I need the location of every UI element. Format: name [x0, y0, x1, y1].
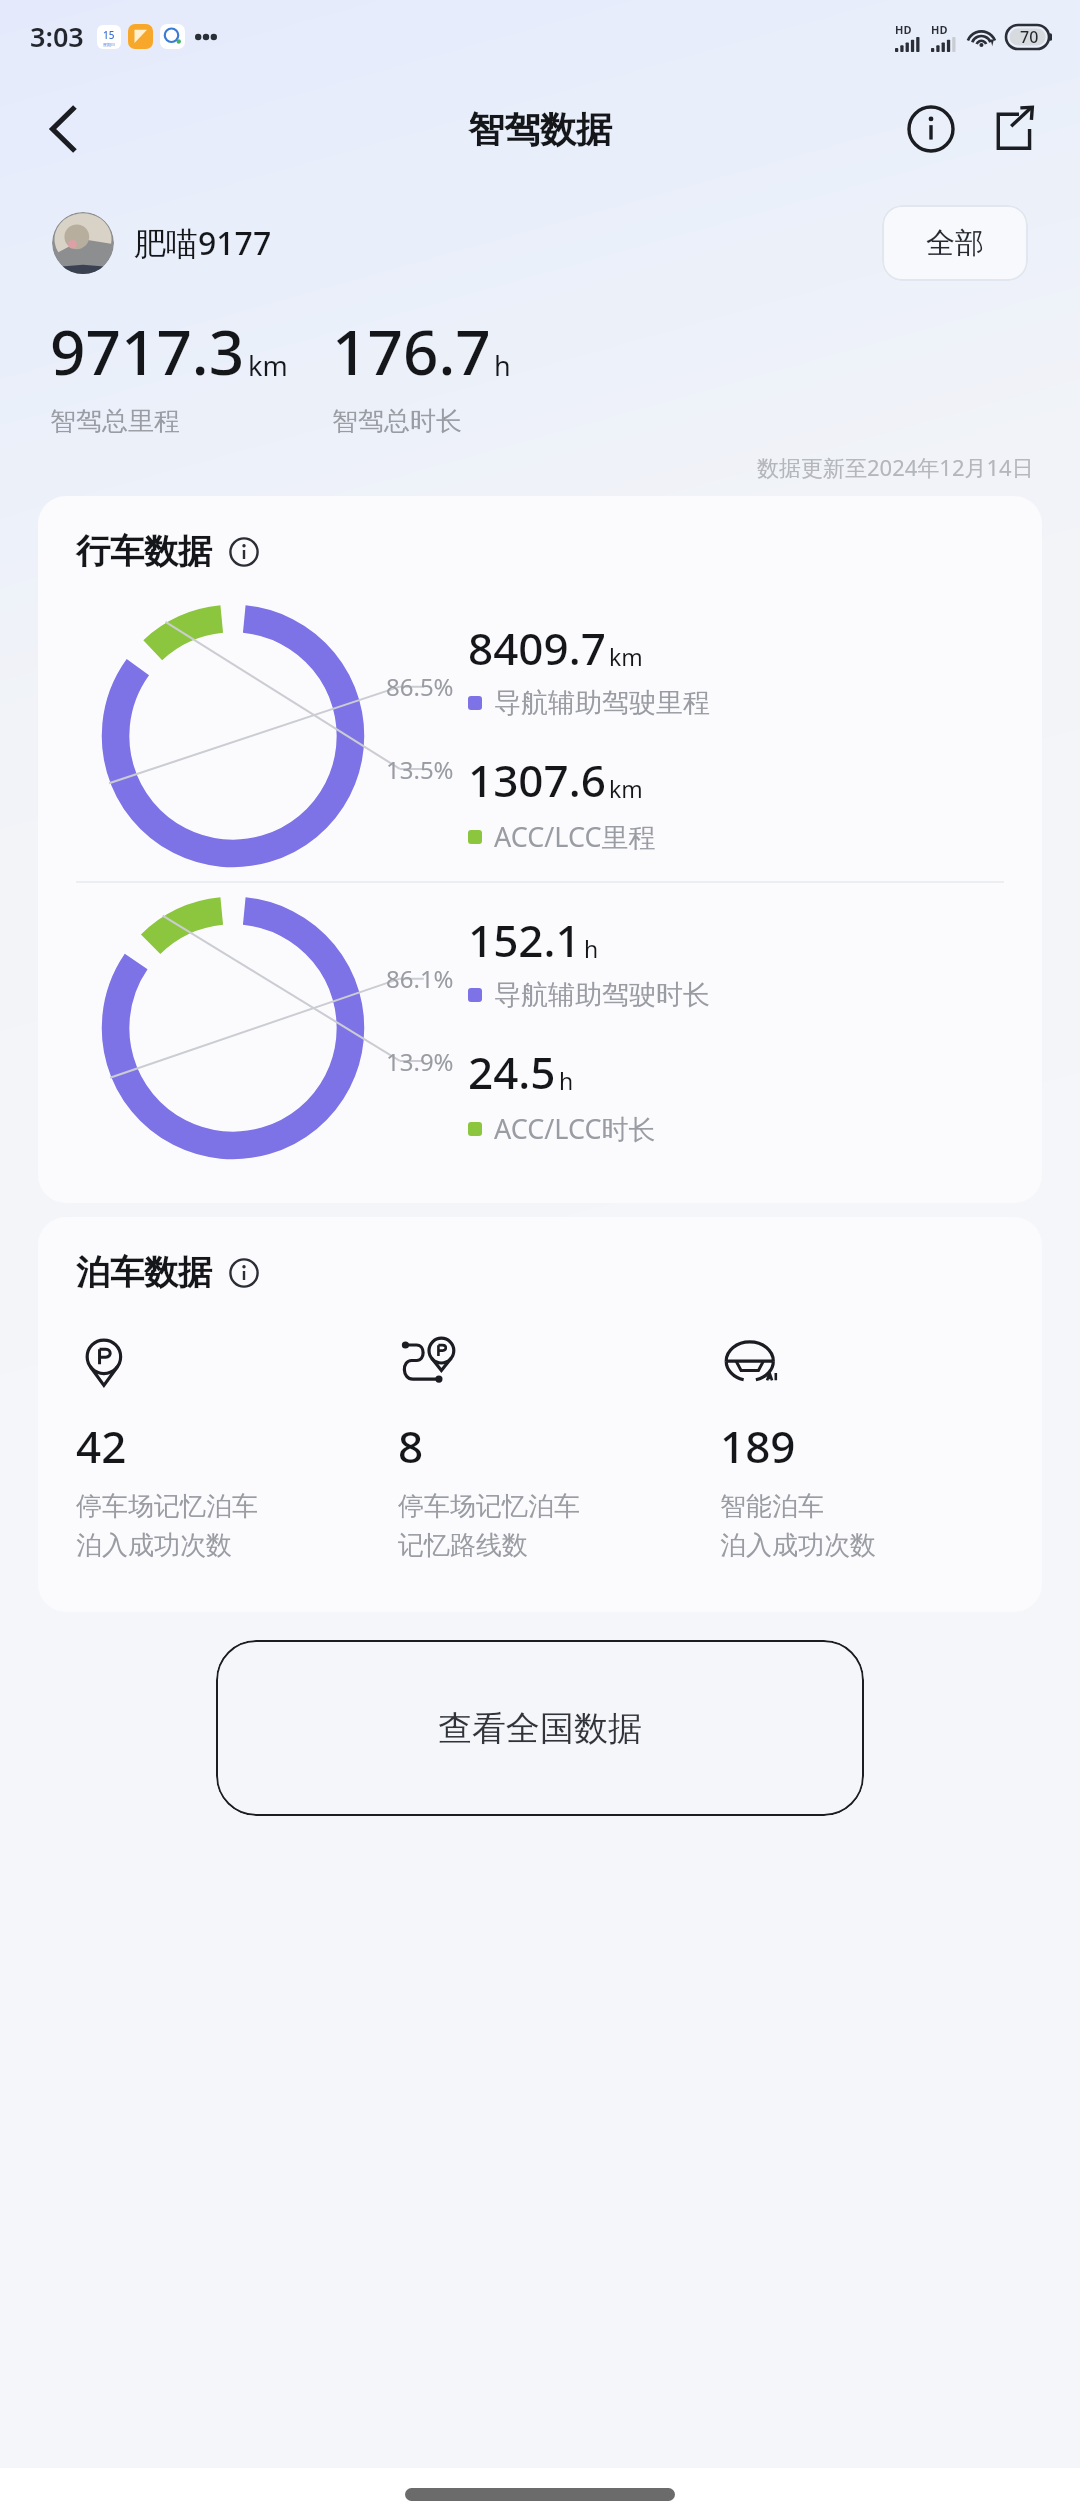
staticText: ACC/LCC时长: [494, 1110, 656, 1147]
staticText: 70: [1020, 26, 1039, 48]
staticText: 智驾总时长: [332, 405, 462, 438]
staticText: ACC/LCC里程: [494, 818, 656, 855]
staticText: 泊入成功次数: [76, 1529, 232, 1562]
staticText: 13.9%: [386, 1045, 454, 1078]
staticText: 42: [76, 1416, 127, 1476]
staticText: 肥喵9177: [134, 221, 272, 265]
staticText: 行车数据: [76, 530, 212, 573]
staticText: 停车场记忆泊车: [398, 1490, 580, 1523]
staticText: 24.5: [468, 1042, 556, 1102]
staticText: 176.7: [332, 309, 491, 393]
staticText: h: [559, 1065, 574, 1096]
staticText: 智驾数据: [468, 107, 612, 152]
staticText: 15: [103, 28, 115, 42]
button[interactable]: Back: [28, 93, 100, 165]
staticText: 智能泊车: [720, 1490, 824, 1523]
button[interactable]: Info: [898, 96, 964, 162]
staticText: 查看全国数据: [438, 1707, 642, 1750]
staticText: 9717.3: [50, 309, 245, 393]
button[interactable]: 查看全国数据: [216, 1640, 864, 1816]
staticText: 泊入成功次数: [720, 1529, 876, 1562]
staticText: HD: [895, 22, 912, 37]
button[interactable]: [52, 212, 114, 274]
staticText: 智驾总里程: [50, 405, 180, 438]
staticText: km: [609, 773, 643, 804]
staticText: 86.1%: [386, 962, 454, 995]
staticText: 152.1: [468, 910, 581, 970]
staticText: 星期日: [103, 42, 115, 47]
staticText: km: [609, 641, 643, 672]
staticText: h: [494, 347, 511, 384]
button[interactable]: Info: [224, 1253, 264, 1293]
staticText: h: [584, 933, 599, 964]
staticText: 导航辅助驾驶里程: [494, 686, 710, 720]
staticText: 全部: [926, 225, 984, 262]
staticText: 数据更新至2024年12月14日: [757, 452, 1034, 482]
staticText: km: [248, 347, 288, 384]
staticText: 86.5%: [386, 670, 454, 703]
staticText: 3:03: [30, 18, 84, 55]
staticText: 8: [398, 1416, 424, 1476]
staticText: 停车场记忆泊车: [76, 1490, 258, 1523]
staticText: 8409.7: [468, 618, 606, 678]
staticText: 13.5%: [386, 753, 454, 786]
staticText: 1307.6: [468, 750, 606, 810]
button[interactable]: Share: [980, 96, 1046, 162]
staticText: 记忆路线数: [398, 1529, 528, 1562]
staticText: HD: [931, 22, 948, 37]
staticText: 泊车数据: [76, 1251, 212, 1294]
button[interactable]: 全部: [882, 205, 1028, 281]
staticText: 189: [720, 1416, 796, 1476]
button[interactable]: Info: [224, 532, 264, 572]
staticText: 导航辅助驾驶时长: [494, 978, 710, 1012]
